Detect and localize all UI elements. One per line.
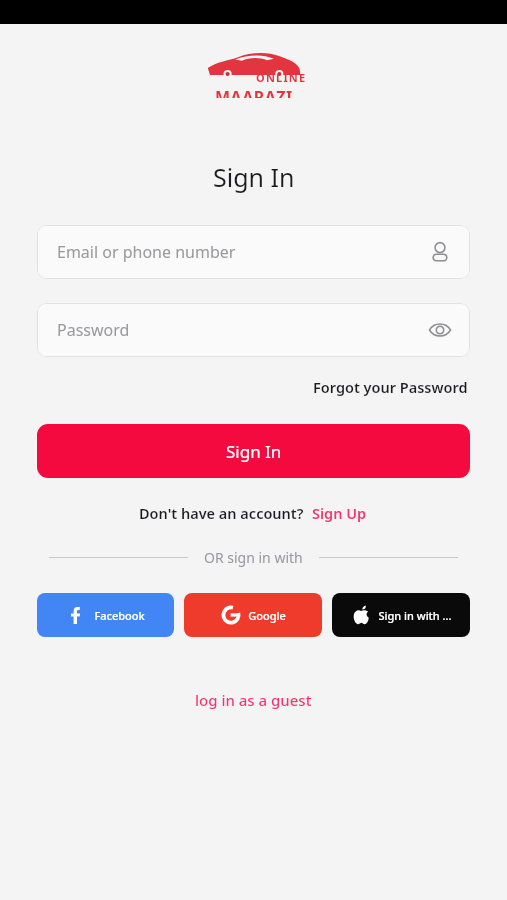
button[interactable]: Sign in with ...: [332, 593, 470, 637]
staticText: Google: [248, 608, 286, 623]
button[interactable]: Facebook: [37, 593, 174, 637]
staticText: ONLINE: [256, 70, 307, 85]
staticText: OR sign in with: [204, 548, 303, 567]
staticText: Sign In: [226, 440, 282, 463]
staticText: Sign in with ...: [378, 608, 452, 623]
staticText: Facebook: [94, 608, 145, 623]
button[interactable]: log in as a guest: [189, 686, 318, 714]
staticText: MAARAZI: [215, 86, 293, 98]
staticText: Sign In: [213, 160, 295, 194]
button[interactable]: Forgot your Password: [311, 374, 470, 400]
staticText: Sign Up: [312, 503, 367, 523]
staticText: Don't have an account?: [139, 503, 304, 523]
other: Account: [427, 239, 453, 265]
button[interactable]: Google: [184, 593, 322, 637]
button[interactable]: Sign In: [37, 424, 470, 478]
staticText: Email or phone number: [57, 241, 427, 263]
staticText: Password: [57, 319, 427, 341]
staticText: log in as a guest: [195, 690, 312, 710]
button[interactable]: Password: [37, 303, 470, 357]
button[interactable]: Email or phone number: [37, 225, 470, 279]
staticText: Forgot your Password: [313, 377, 468, 397]
button[interactable]: Sign Up: [310, 500, 369, 526]
other: Show password: [427, 317, 453, 343]
